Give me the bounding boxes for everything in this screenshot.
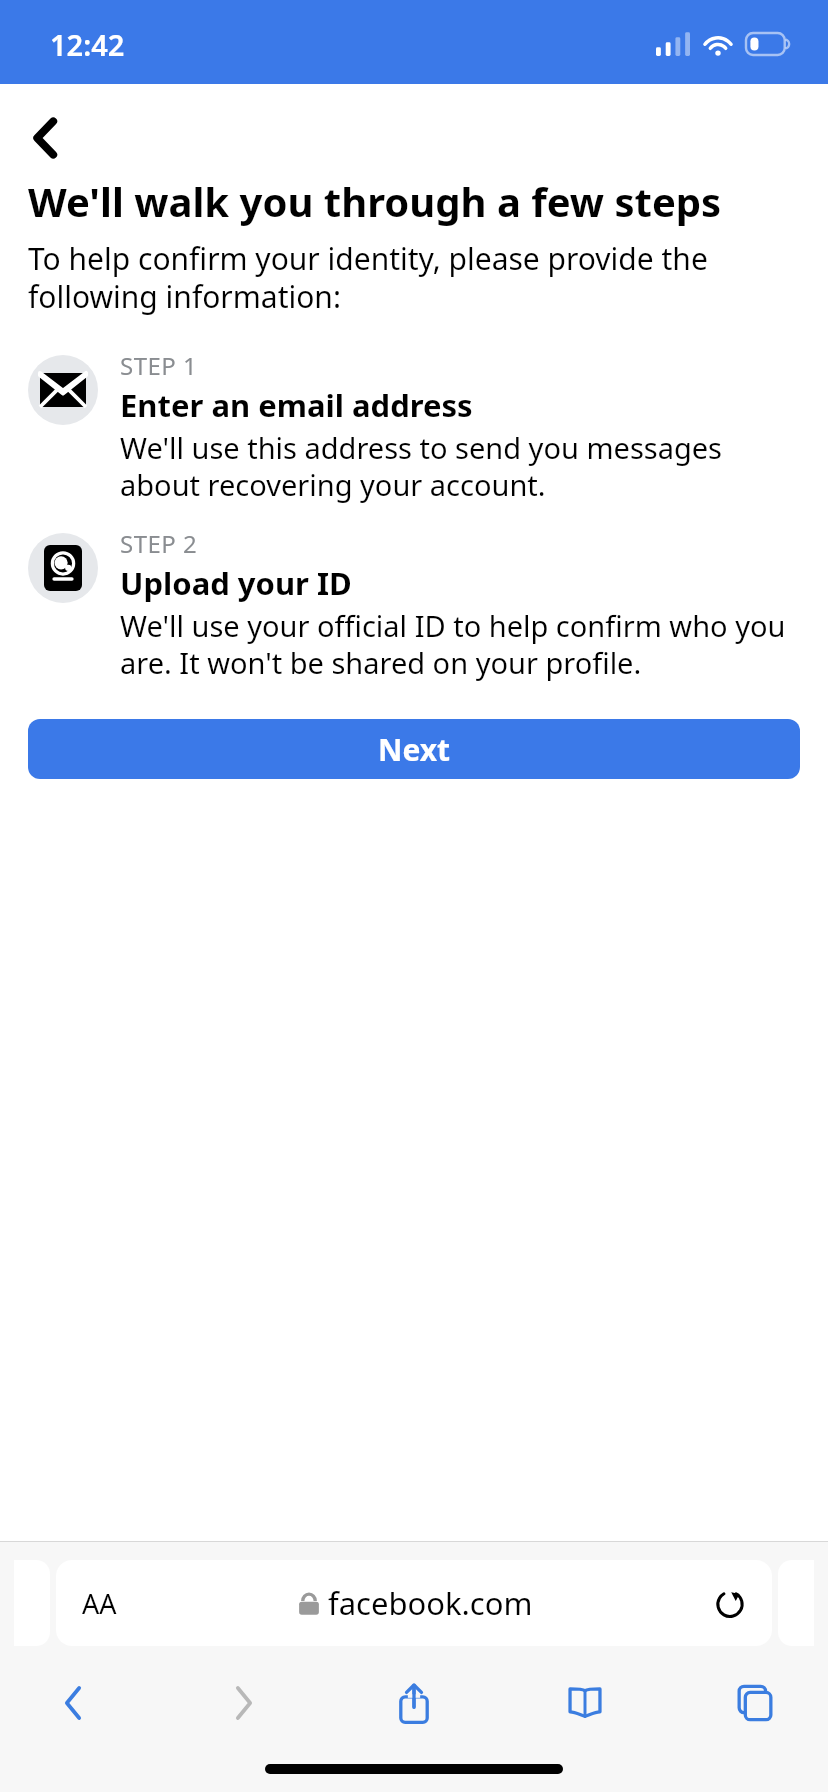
staticText: STEP 1 (120, 349, 198, 382)
staticText: STEP 2 (120, 527, 198, 560)
button[interactable]: Back (16, 108, 76, 168)
button[interactable]: Tabs (712, 1660, 798, 1746)
button[interactable]: Share (371, 1660, 457, 1746)
staticText: Next (378, 729, 451, 770)
staticText: AA (82, 1585, 117, 1622)
staticText: facebook.com (328, 1582, 533, 1624)
button[interactable]: Next (28, 719, 800, 779)
staticText: To help confirm your identity, please pr… (28, 238, 800, 317)
button[interactable]: Bookmarks (542, 1660, 628, 1746)
button[interactable]: STEP 2 (28, 533, 800, 689)
button[interactable]: Reload (710, 1583, 750, 1623)
button[interactable]: STEP 1 (28, 355, 800, 511)
staticText: Enter an email address (120, 384, 473, 426)
staticText: We'll use this address to send you messa… (120, 428, 800, 505)
staticText: 12:42 (50, 25, 125, 64)
button[interactable]: facebook.com (56, 1560, 772, 1646)
button[interactable]: Forward (201, 1660, 287, 1746)
staticText: Upload your ID (120, 562, 352, 604)
button[interactable]: Back (30, 1660, 116, 1746)
staticText: We'll walk you through a few steps (28, 174, 722, 228)
staticText: We'll use your official ID to help confi… (120, 606, 800, 683)
